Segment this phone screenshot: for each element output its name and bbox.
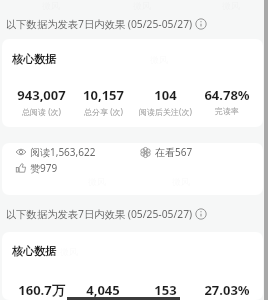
staticText: 总分享 (次) — [84, 106, 123, 117]
button[interactable]: 943,007 — [11, 86, 72, 117]
staticText: 阅读1,563,622 — [30, 145, 96, 159]
staticText: 核心数据 — [12, 52, 56, 66]
staticText: 64.78% — [204, 86, 250, 104]
button[interactable]: 赞979 — [16, 161, 58, 175]
staticText: 104 — [154, 86, 177, 104]
button[interactable]: 以下数据为发表7日内效果 (05/25-05/27) — [6, 16, 207, 32]
staticText: 赞979 — [30, 161, 58, 175]
staticText: 阅读后关注(次) — [139, 106, 192, 117]
button[interactable]: 153 — [134, 281, 196, 300]
staticText: 943,007 — [17, 86, 66, 104]
button[interactable]: 104 — [134, 86, 196, 117]
staticText: 160.7万 — [18, 281, 65, 299]
staticText: 以下数据为发表7日内效果 (05/25-05/27) — [6, 17, 193, 31]
staticText: 153 — [154, 281, 177, 299]
staticText: 在看567 — [155, 145, 193, 159]
staticText: 总阅读 (次) — [22, 106, 61, 117]
staticText: 核心数据 — [12, 244, 56, 258]
button[interactable]: 27.03% — [196, 281, 258, 300]
staticText: 完读率 — [215, 106, 239, 116]
staticText: 以下数据为发表7日内效果 (05/25-05/27) — [6, 207, 193, 221]
button[interactable]: 4,045 — [72, 281, 134, 300]
staticText: 微风 — [150, 208, 168, 219]
staticText: 4,045 — [86, 281, 120, 299]
button[interactable]: 阅读1,563,622 — [16, 145, 96, 159]
staticText: 27.03% — [204, 281, 250, 299]
button[interactable]: 10,157 — [72, 86, 134, 117]
staticText: 10,157 — [83, 86, 124, 104]
button[interactable]: 以下数据为发表7日内效果 (05/25-05/27) — [6, 206, 207, 222]
button[interactable]: 160.7万 — [11, 281, 72, 300]
button[interactable]: 在看567 — [140, 145, 193, 159]
button[interactable]: 64.78% — [196, 86, 258, 116]
